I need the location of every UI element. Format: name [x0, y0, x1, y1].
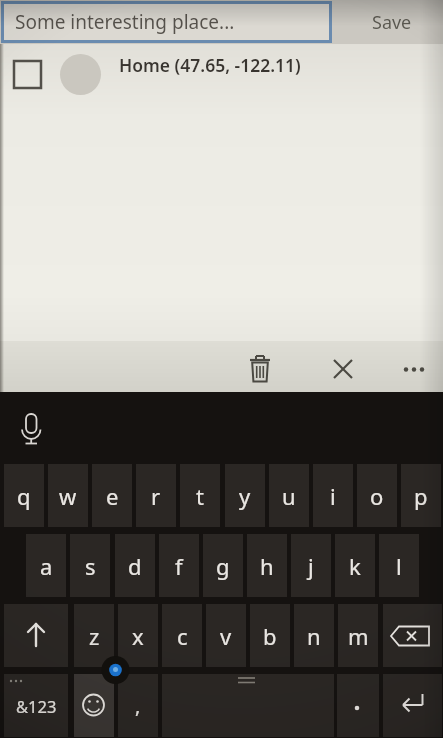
staticText: v: [220, 621, 232, 651]
staticText: x: [132, 621, 144, 651]
staticText: l: [396, 551, 402, 581]
staticText: g: [216, 551, 230, 581]
staticText: q: [17, 481, 31, 511]
staticText: t: [196, 481, 204, 511]
staticText: y: [239, 481, 251, 511]
staticText: ,: [135, 692, 141, 719]
staticText: b: [263, 621, 277, 651]
staticText: o: [370, 481, 384, 511]
staticText: h: [260, 551, 274, 581]
staticText: e: [106, 481, 119, 511]
staticText: a: [40, 551, 53, 581]
staticText: Home (47.65, -122.11): [119, 53, 301, 77]
staticText: s: [85, 551, 96, 581]
staticText: n: [307, 621, 321, 651]
staticText: j: [308, 551, 314, 581]
staticText: r: [151, 481, 161, 511]
staticText: f: [175, 551, 183, 581]
staticText: Some interesting place...: [15, 9, 235, 35]
staticText: d: [128, 551, 142, 581]
staticText: m: [348, 621, 369, 651]
staticText: w: [59, 481, 77, 511]
staticText: c: [177, 621, 188, 651]
staticText: u: [282, 481, 296, 511]
staticText: p: [414, 481, 428, 511]
staticText: z: [89, 621, 100, 651]
staticText: i: [330, 481, 336, 511]
staticText: k: [349, 551, 361, 581]
staticText: &123: [16, 695, 57, 717]
staticText: Save: [372, 10, 412, 35]
